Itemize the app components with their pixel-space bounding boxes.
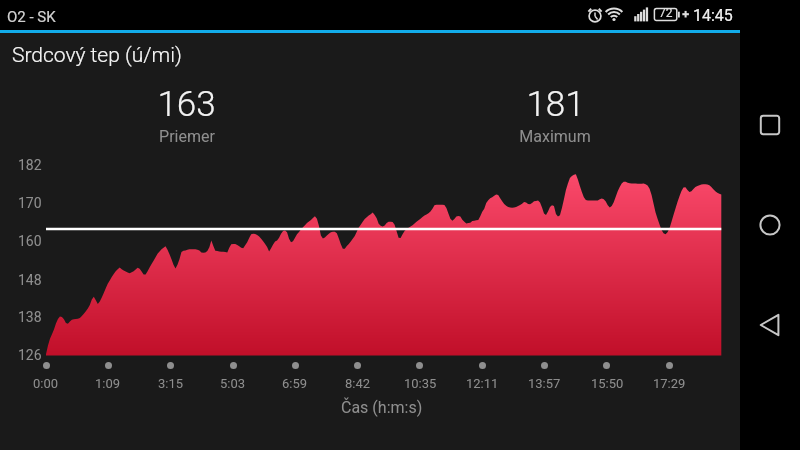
button[interactable]: 163 (86, 84, 286, 144)
staticText: 15:50 (591, 376, 624, 391)
staticText: Maximum (519, 127, 591, 146)
staticText: 160 (18, 233, 42, 249)
staticText: 10:35 (404, 376, 437, 391)
staticText: 138 (18, 309, 42, 325)
staticText: 170 (18, 195, 42, 211)
staticText: 72 (659, 6, 673, 20)
staticText: 17:29 (653, 376, 686, 391)
button[interactable]: Recent apps (746, 101, 794, 149)
staticText: 5:03 (220, 376, 246, 391)
staticText: 148 (18, 272, 42, 288)
staticText: 163 (157, 84, 216, 125)
staticText: 0:00 (33, 376, 59, 391)
staticText: 14:45 (693, 6, 733, 25)
button[interactable]: 181 (455, 84, 655, 144)
button[interactable]: Srdcový tep (ú/mi) (0, 33, 740, 73)
button[interactable]: Back (746, 301, 794, 349)
staticText: 13:57 (528, 376, 561, 391)
staticText: 3:15 (158, 376, 184, 391)
staticText: 126 (18, 347, 42, 363)
staticText: Srdcový tep (ú/mi) (12, 43, 182, 68)
staticText: 1:09 (95, 376, 121, 391)
staticText: 181 (526, 84, 585, 125)
staticText: Čas (h:m:s) (341, 398, 423, 417)
staticText: 6:59 (282, 376, 308, 391)
button[interactable]: Heart rate graph (46, 164, 721, 355)
button[interactable]: Home (746, 201, 794, 249)
staticText: 12:11 (466, 376, 499, 391)
staticText: O2 - SK (7, 8, 56, 26)
staticText: 8:42 (345, 376, 371, 391)
staticText: Priemer (159, 127, 215, 146)
staticText: 182 (18, 157, 42, 173)
